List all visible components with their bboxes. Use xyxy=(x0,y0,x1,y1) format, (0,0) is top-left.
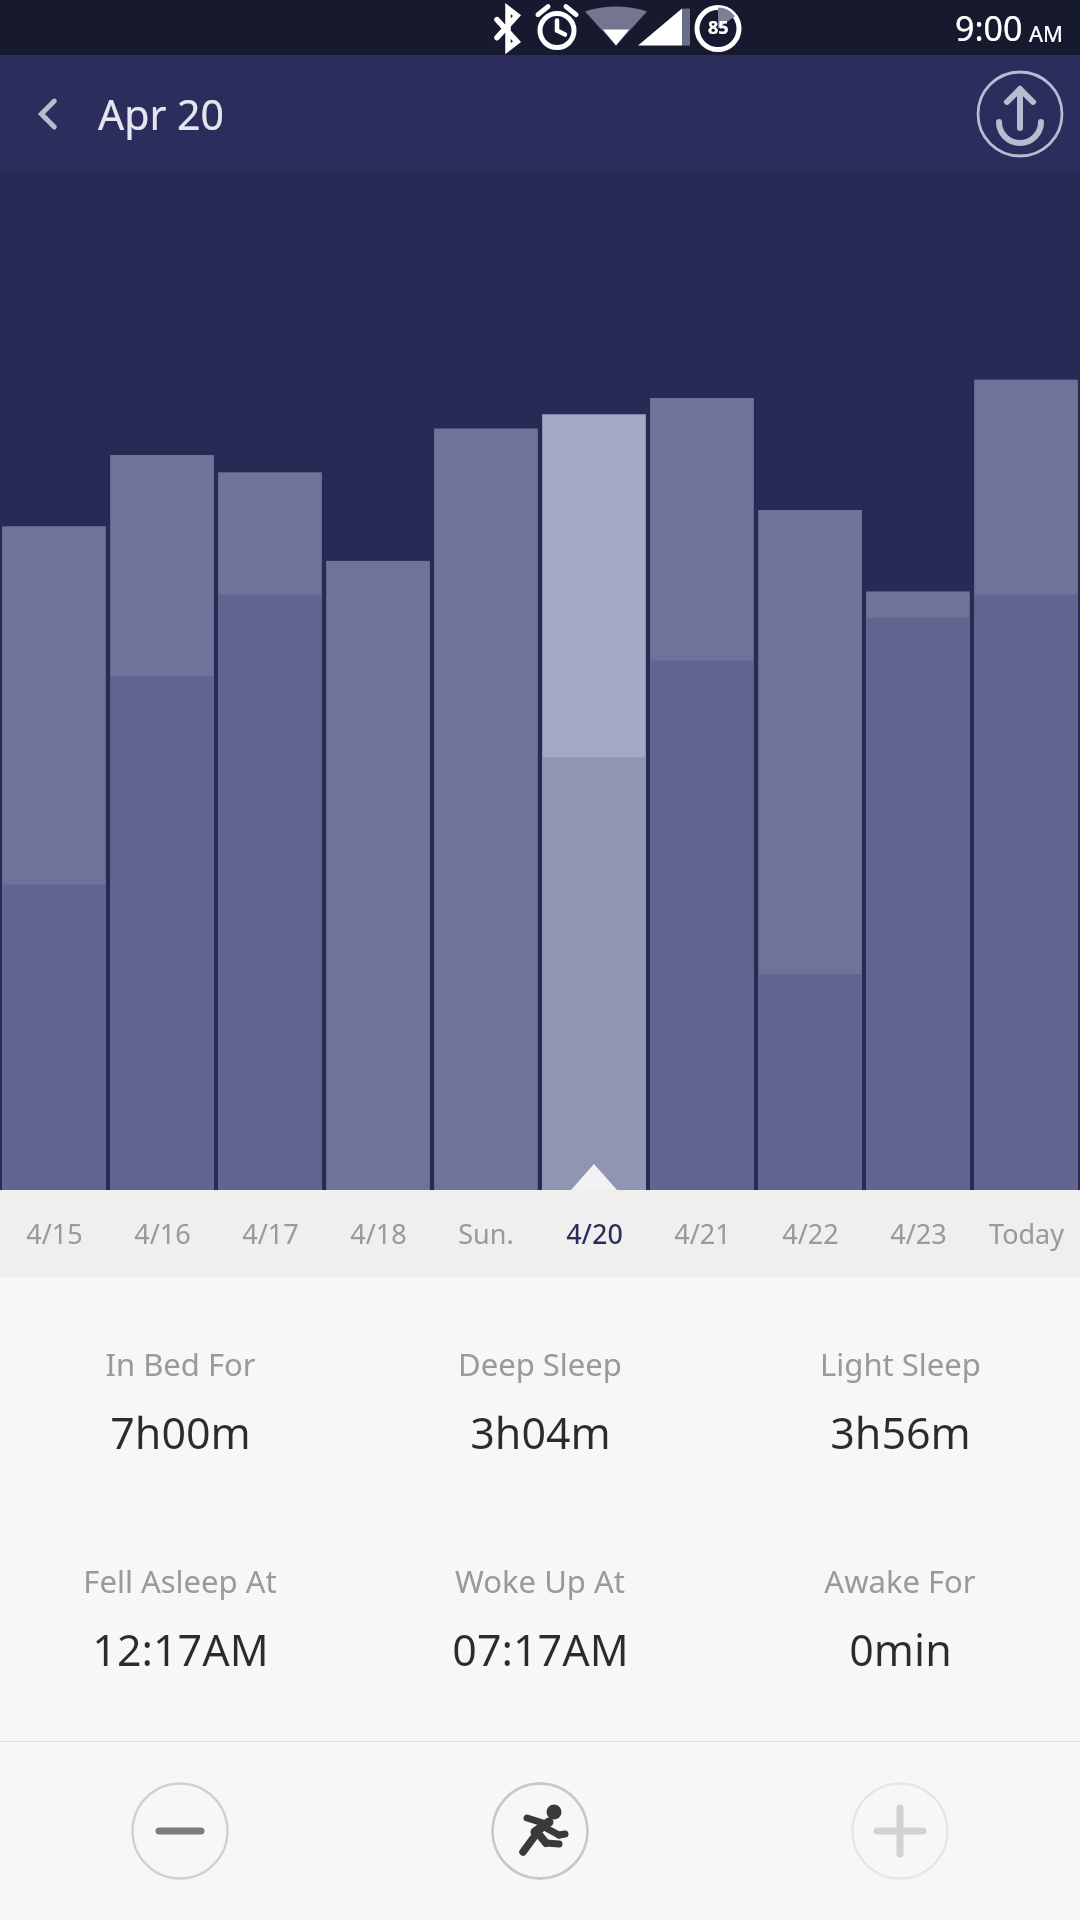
button[interactable]: Increase xyxy=(851,1782,949,1880)
button[interactable]: Fell Asleep At xyxy=(0,1560,360,1679)
staticText: Sun. xyxy=(458,1215,514,1252)
staticText: 0min xyxy=(849,1620,952,1679)
button[interactable]: 4/20 xyxy=(540,1190,648,1277)
button[interactable] xyxy=(0,172,1080,1190)
staticText: Woke Up At xyxy=(455,1560,625,1602)
button[interactable]: 4/16 xyxy=(108,1190,216,1277)
staticText: 7h00m xyxy=(110,1403,251,1462)
button[interactable]: 4/15 xyxy=(0,1190,108,1277)
staticText: 12:17AM xyxy=(92,1620,269,1679)
staticText: 9:00 xyxy=(955,5,1023,51)
button[interactable]: Light Sleep xyxy=(720,1343,1080,1462)
button[interactable]: Woke Up At xyxy=(360,1560,720,1679)
button[interactable]: 4/21 xyxy=(648,1190,756,1277)
button[interactable]: 4/17 xyxy=(216,1190,324,1277)
button[interactable]: 4/18 xyxy=(324,1190,432,1277)
button[interactable]: 4/22 xyxy=(756,1190,864,1277)
button[interactable]: Share xyxy=(976,70,1064,158)
button[interactable]: 4/23 xyxy=(864,1190,972,1277)
button[interactable]: Awake For xyxy=(720,1560,1080,1679)
staticText: 3h04m xyxy=(470,1403,611,1462)
staticText: 4/18 xyxy=(350,1215,407,1252)
button[interactable]: Back xyxy=(16,81,82,147)
button[interactable]: In Bed For xyxy=(0,1343,360,1462)
staticText: 07:17AM xyxy=(452,1620,629,1679)
button[interactable]: Sun. xyxy=(432,1190,540,1277)
staticText: Light Sleep xyxy=(820,1343,981,1385)
staticText: 4/17 xyxy=(242,1215,299,1252)
staticText: 4/16 xyxy=(134,1215,191,1252)
staticText: Apr 20 xyxy=(98,86,224,142)
staticText: Deep Sleep xyxy=(458,1343,622,1385)
button[interactable]: Decrease xyxy=(131,1782,229,1880)
staticText: 4/21 xyxy=(674,1215,731,1252)
staticText: AM xyxy=(1029,18,1064,48)
button[interactable]: Deep Sleep xyxy=(360,1343,720,1462)
staticText: 4/20 xyxy=(566,1215,623,1252)
staticText: Today xyxy=(989,1215,1064,1252)
staticText: Awake For xyxy=(824,1560,976,1602)
staticText: 4/23 xyxy=(890,1215,947,1252)
staticText: Fell Asleep At xyxy=(83,1560,277,1602)
staticText: 4/15 xyxy=(26,1215,83,1252)
staticText: 4/22 xyxy=(782,1215,839,1252)
staticText: 3h56m xyxy=(830,1403,971,1462)
button[interactable]: Activity xyxy=(491,1782,589,1880)
staticText: 85 xyxy=(708,15,729,40)
staticText: In Bed For xyxy=(105,1343,256,1385)
button[interactable]: Today xyxy=(972,1190,1080,1277)
